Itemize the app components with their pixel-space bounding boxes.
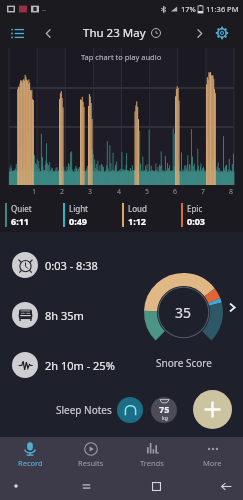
other: Assistant: [10, 480, 22, 492]
button[interactable]: Results: [60, 437, 121, 472]
button[interactable]: Trends: [121, 437, 182, 472]
staticText: 75: [159, 403, 170, 415]
staticText: More: [203, 458, 222, 468]
staticText: Quiet: [11, 203, 32, 214]
button[interactable]: Weight 75 kg: [151, 397, 177, 423]
staticText: 0:03: [187, 215, 205, 227]
other: Home: [151, 481, 162, 492]
staticText: Sleep Notes: [56, 403, 112, 417]
button[interactable]: Record: [0, 437, 60, 472]
staticText: 2h 10m - 25%: [45, 358, 115, 373]
button[interactable]: Loud: [122, 198, 181, 232]
staticText: 1: [32, 187, 37, 197]
staticText: Tap chart to play audio: [81, 52, 162, 62]
staticText: 11:36 PM: [206, 4, 239, 14]
staticText: Record: [18, 458, 43, 468]
staticText: 1:12: [128, 215, 146, 227]
button[interactable]: 8h 35m: [12, 302, 84, 328]
button[interactable]: Add: [193, 390, 232, 429]
staticText: Trends: [140, 458, 164, 468]
staticText: 7: [201, 187, 206, 197]
button[interactable]: Quiet: [5, 198, 63, 232]
staticText: ..: [42, 4, 46, 14]
staticText: 8h 35m: [45, 308, 84, 323]
button[interactable]: Light: [63, 198, 122, 232]
staticText: 35: [175, 303, 192, 322]
button[interactable]: Previous day: [36, 21, 60, 45]
staticText: 0:49: [69, 215, 87, 227]
staticText: 6:11: [11, 215, 29, 227]
button[interactable]: Next day: [187, 21, 211, 45]
staticText: 2: [60, 187, 65, 197]
staticText: Snore Score: [156, 356, 212, 370]
staticText: 4: [117, 187, 122, 197]
staticText: Epic: [187, 203, 203, 214]
button[interactable]: More details: [224, 299, 240, 315]
staticText: 17%: [181, 4, 196, 14]
staticText: 0:03 - 8:38: [45, 258, 98, 273]
staticText: Results: [78, 458, 104, 468]
staticText: 3: [88, 187, 93, 197]
staticText: 6: [173, 187, 178, 197]
button[interactable]: Mouthpiece: [117, 397, 143, 423]
button[interactable]: 2h 10m - 25%: [12, 352, 115, 378]
button[interactable]: Settings: [209, 20, 235, 46]
staticText: Light: [69, 203, 89, 214]
other: Recents: [80, 480, 93, 493]
staticText: kg: [162, 415, 168, 422]
staticText: 8: [229, 187, 234, 197]
other: Back: [220, 480, 233, 493]
button[interactable]: Snore Score: [144, 273, 223, 352]
staticText: 5: [145, 187, 150, 197]
button[interactable]: 0:03 - 8:38: [12, 252, 98, 278]
button[interactable]: Epic: [181, 198, 240, 232]
staticText: Loud: [128, 203, 147, 214]
button[interactable]: More: [182, 437, 243, 472]
staticText: Thu 23 May: [83, 25, 146, 41]
button[interactable]: Menu: [4, 20, 30, 46]
